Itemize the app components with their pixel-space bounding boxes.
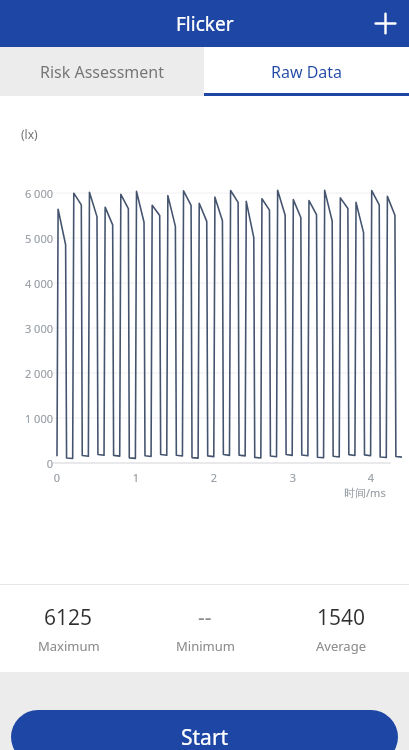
staticText: 5 000 xyxy=(8,231,53,246)
staticText: Minimum xyxy=(176,637,235,655)
staticText: 4 xyxy=(359,470,383,485)
button[interactable]: -- xyxy=(137,585,273,672)
staticText: 3 000 xyxy=(8,321,53,336)
staticText: 6125 xyxy=(44,603,93,632)
staticText: Start xyxy=(181,723,229,750)
staticText: 1 000 xyxy=(8,411,53,426)
button[interactable]: Start xyxy=(11,710,398,750)
staticText: (lx) xyxy=(21,126,38,142)
staticText: Average xyxy=(316,637,366,655)
staticText: 3 xyxy=(281,470,305,485)
staticText: 4 000 xyxy=(8,276,53,291)
staticText: 1540 xyxy=(317,603,366,632)
button[interactable]: Raw Data xyxy=(204,47,409,96)
staticText: 2 000 xyxy=(8,366,53,381)
staticText: -- xyxy=(198,603,212,632)
staticText: Raw Data xyxy=(271,61,343,83)
button[interactable]: Add measurement xyxy=(362,0,409,47)
staticText: 6 000 xyxy=(8,186,53,201)
staticText: 0 xyxy=(8,456,53,471)
button[interactable]: Risk Assessment xyxy=(0,47,204,96)
staticText: Maximum xyxy=(38,637,100,655)
staticText: Risk Assessment xyxy=(40,61,165,83)
button[interactable]: 1540 xyxy=(273,585,409,672)
staticText: 1 xyxy=(124,470,148,485)
staticText: 0 xyxy=(45,470,69,485)
staticText: Flicker xyxy=(176,11,234,37)
staticText: 时间/ms xyxy=(344,485,386,500)
staticText: 2 xyxy=(202,470,226,485)
button[interactable]: 6125 xyxy=(0,585,137,672)
